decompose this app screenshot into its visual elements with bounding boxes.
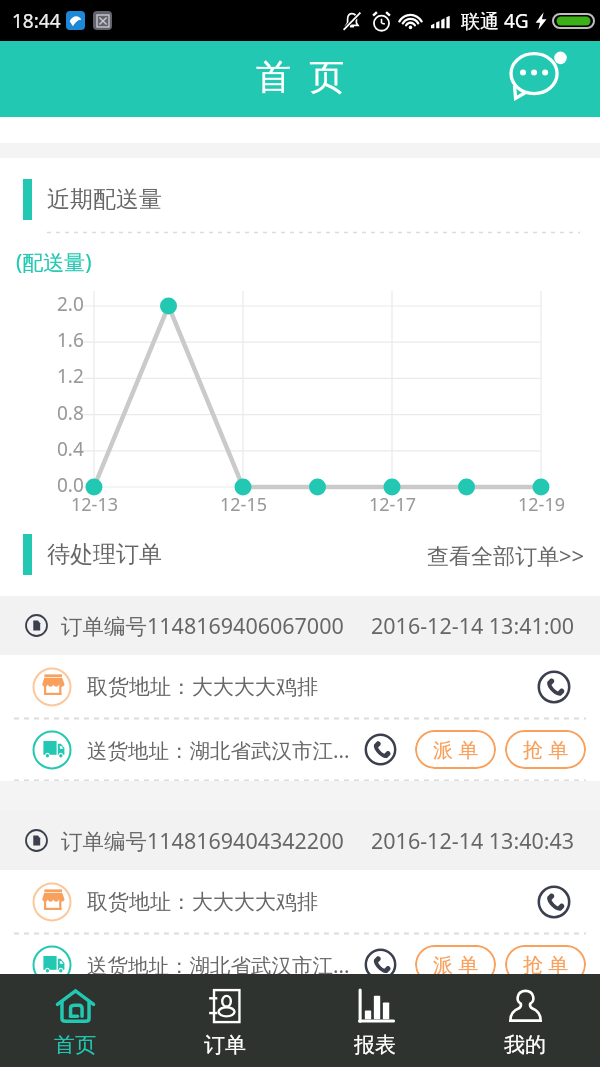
staticText: 送货地址：湖北省武汉市江... — [87, 951, 350, 979]
staticText: 12-19 — [518, 492, 565, 517]
button[interactable]: 报表 — [300, 974, 450, 1067]
staticText: (配送量) — [16, 248, 92, 277]
button[interactable]: Call receiver — [364, 948, 397, 981]
button[interactable]: 抢 单 — [505, 730, 586, 769]
staticText: 1.2 — [57, 363, 84, 389]
staticText: 抢 单 — [523, 951, 569, 978]
staticText: 派 单 — [433, 951, 479, 978]
button[interactable]: 订单编号1148169404342200 — [0, 811, 600, 996]
staticText: 12-13 — [71, 492, 118, 517]
staticText: 12-15 — [220, 492, 267, 517]
staticText: 18:44 — [12, 8, 61, 34]
staticText: 0.8 — [57, 400, 84, 426]
staticText: 2016-12-14 13:40:43 — [371, 826, 575, 855]
button[interactable]: 首页 — [0, 974, 150, 1067]
button[interactable]: 查看全部订单>> — [412, 534, 600, 575]
button[interactable]: 抢 单 — [505, 945, 586, 984]
staticText: 1.6 — [57, 327, 84, 353]
staticText: 查看全部订单>> — [427, 540, 585, 570]
staticText: 订单 — [204, 1032, 246, 1058]
staticText: 12-17 — [369, 492, 416, 517]
staticText: 2016-12-14 13:41:00 — [371, 611, 575, 640]
staticText: 0.0 — [57, 472, 84, 498]
staticText: 近期配送量 — [47, 185, 162, 214]
staticText: 取货地址：大大大大鸡排 — [87, 674, 318, 700]
staticText: 首页 — [54, 1032, 96, 1058]
staticText: 联通 4G — [461, 8, 529, 34]
button[interactable]: Call receiver — [364, 733, 397, 766]
button[interactable]: 订单编号1148169406067000 — [0, 596, 600, 781]
staticText: 报表 — [354, 1032, 396, 1058]
button[interactable]: 派 单 — [415, 945, 496, 984]
button[interactable]: Messages — [508, 47, 572, 111]
button[interactable]: 派 单 — [415, 730, 496, 769]
staticText: 抢 单 — [523, 736, 569, 763]
staticText: 首 页 — [256, 52, 345, 100]
staticText: 0.4 — [57, 436, 84, 462]
staticText: 我的 — [504, 1032, 546, 1058]
staticText: 2.0 — [57, 291, 84, 317]
staticText: 待处理订单 — [47, 540, 162, 569]
button[interactable]: 我的 — [450, 974, 600, 1067]
staticText: 订单编号1148169404342200 — [61, 826, 344, 855]
button[interactable]: Call pickup — [537, 670, 571, 704]
staticText: 派 单 — [433, 736, 479, 763]
button[interactable]: Call pickup — [537, 885, 571, 919]
staticText: 取货地址：大大大大鸡排 — [87, 889, 318, 915]
staticText: 送货地址：湖北省武汉市江... — [87, 736, 350, 764]
staticText: 订单编号1148169406067000 — [61, 611, 344, 640]
button[interactable]: 订单 — [150, 974, 300, 1067]
